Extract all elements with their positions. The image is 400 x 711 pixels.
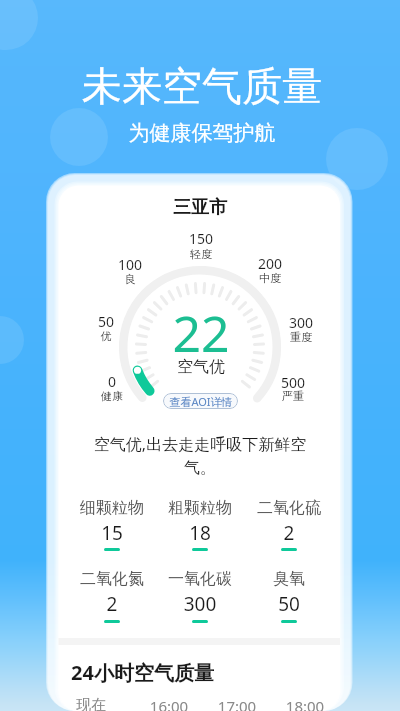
staticText: 50 xyxy=(249,591,329,617)
staticText: 15 xyxy=(72,520,152,546)
staticText: 三亚市 xyxy=(140,196,260,219)
staticText: 18 xyxy=(160,520,240,546)
staticText: 300 xyxy=(160,591,240,617)
staticText: 臭氧 xyxy=(239,569,339,589)
staticText: 粗颗粒物 xyxy=(150,498,250,518)
staticText: 未来空气质量 xyxy=(52,61,352,111)
staticText: 细颗粒物 xyxy=(62,498,162,518)
staticText: 200 xyxy=(240,254,300,273)
staticText: 查看AOI详情 xyxy=(169,394,233,409)
staticText: 50 xyxy=(76,312,136,331)
staticText: 17:00 xyxy=(207,696,267,711)
staticText: 二氧化氮 xyxy=(62,569,162,589)
button[interactable]: 查看AOI详情 xyxy=(163,393,238,409)
staticText: 16:00 xyxy=(139,696,199,711)
staticText: 一氧化碳 xyxy=(150,569,250,589)
staticText: 二氧化硫 xyxy=(239,498,339,518)
staticText: 轻度 xyxy=(171,247,231,261)
staticText: 为健康保驾护航 xyxy=(52,120,352,146)
staticText: 2 xyxy=(72,591,152,617)
staticText: 中度 xyxy=(240,271,300,285)
staticText: 150 xyxy=(171,229,231,248)
staticText: 空气优,出去走走呼吸下新鲜空气。 xyxy=(85,433,315,478)
staticText: 22 xyxy=(131,299,271,367)
staticText: 24小时空气质量 xyxy=(71,659,214,686)
staticText: 100 xyxy=(100,255,160,274)
staticText: 良 xyxy=(100,272,160,286)
staticText: 500 xyxy=(263,373,323,392)
staticText: 现在 xyxy=(61,696,121,711)
staticText: 0 xyxy=(82,372,142,391)
staticText: 健康 xyxy=(82,389,142,403)
staticText: 18:00 xyxy=(275,696,335,711)
staticText: 2 xyxy=(249,520,329,546)
staticText: 重度 xyxy=(271,330,331,344)
staticText: 空气优 xyxy=(141,357,261,377)
staticText: 优 xyxy=(76,329,136,343)
staticText: 300 xyxy=(271,313,331,332)
staticText: 严重 xyxy=(263,389,323,403)
